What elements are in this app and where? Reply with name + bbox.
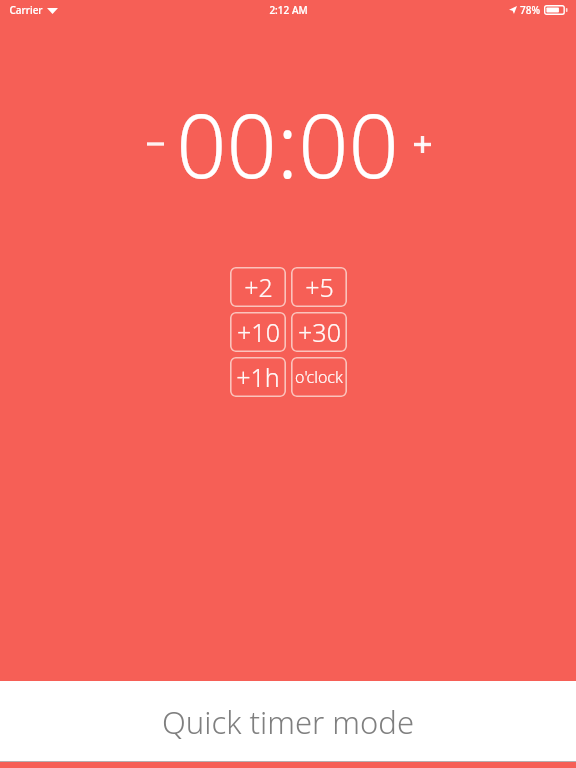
button[interactable]: +10: [230, 312, 286, 352]
button[interactable]: Decrease timer: [138, 127, 172, 161]
staticText: +30: [298, 315, 341, 349]
button[interactable]: Quick timer mode: [0, 681, 576, 762]
button[interactable]: +5: [291, 267, 347, 307]
button[interactable]: +2: [230, 267, 286, 307]
staticText: +2: [244, 270, 273, 304]
staticText: Quick timer mode: [162, 701, 414, 743]
button[interactable]: Increase timer: [405, 127, 439, 161]
staticText: +10: [237, 315, 280, 349]
button[interactable]: +1h: [230, 357, 286, 397]
button[interactable]: o'clock: [291, 357, 347, 397]
staticText: Carrier: [9, 3, 43, 17]
staticText: 78%: [520, 3, 540, 17]
staticText: +1h: [236, 360, 280, 394]
staticText: o'clock: [295, 366, 343, 388]
staticText: 2:12 AM: [269, 3, 308, 17]
staticText: 00:00: [176, 84, 399, 204]
staticText: +5: [305, 270, 334, 304]
button[interactable]: +30: [291, 312, 347, 352]
